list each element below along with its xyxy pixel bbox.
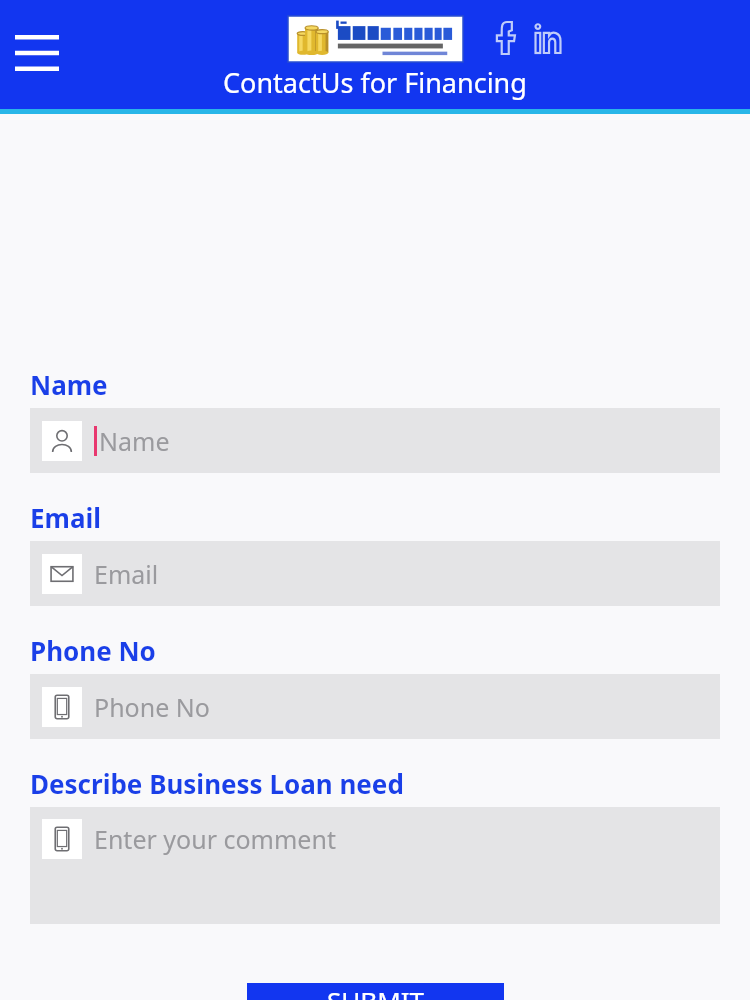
button[interactable]: Enter your comment <box>30 807 720 924</box>
button[interactable]: SUBMIT <box>247 983 504 1000</box>
button[interactable]: Facebook <box>488 16 526 60</box>
button[interactable]: PMF Bancorp logo <box>288 16 463 62</box>
staticText: Email <box>94 557 159 591</box>
staticText: Enter your comment <box>94 822 336 856</box>
button[interactable]: LinkedIn <box>528 16 568 60</box>
button[interactable]: Open navigation menu <box>6 24 68 82</box>
staticText: Name <box>99 424 170 458</box>
staticText: Phone No <box>94 690 210 724</box>
staticText: Name <box>30 367 108 402</box>
button[interactable]: Email <box>30 541 720 606</box>
staticText: Email <box>30 500 102 535</box>
staticText: Phone No <box>30 633 156 668</box>
button[interactable]: ContactUs for Financing <box>0 65 750 109</box>
staticText: SUBMIT <box>327 983 425 1000</box>
button[interactable]: Name <box>30 408 720 473</box>
button[interactable]: Phone No <box>30 674 720 739</box>
staticText: ContactUs for Financing <box>223 64 527 101</box>
staticText: Describe Business Loan need <box>30 766 404 801</box>
